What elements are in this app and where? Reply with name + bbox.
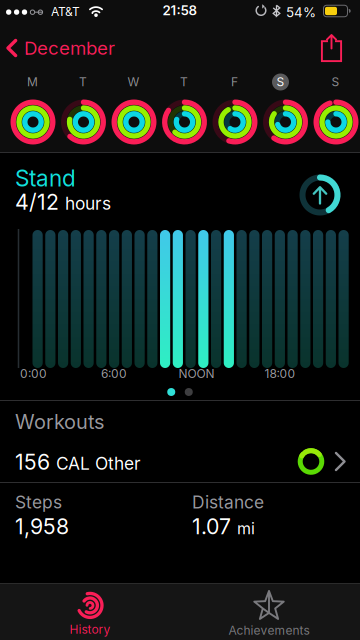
button[interactable]: Rings T	[60, 99, 106, 145]
staticText: Achievements	[228, 623, 309, 638]
button[interactable]: Rings S	[313, 99, 359, 145]
button[interactable]: Workouts, 156 calories, Other	[0, 401, 360, 483]
staticText: December	[24, 37, 115, 59]
staticText: 1,958	[15, 514, 69, 539]
staticText: S	[276, 75, 284, 89]
staticText: 18:00	[264, 366, 295, 381]
staticText: CAL Other	[56, 453, 141, 474]
staticText: Distance	[192, 492, 264, 512]
staticText: AT&T	[51, 4, 80, 19]
button[interactable]: Rings M	[10, 99, 56, 145]
staticText: M	[27, 75, 38, 89]
button[interactable]: Rings S	[262, 99, 308, 145]
staticText: NOON	[178, 366, 214, 381]
staticText: T	[79, 75, 87, 89]
staticText: F	[231, 75, 238, 89]
staticText: 6:00	[101, 366, 127, 381]
staticText: hours	[65, 193, 111, 214]
button[interactable]: Back, December	[0, 33, 115, 63]
button[interactable]: Rings W	[111, 99, 157, 145]
button[interactable]: Share	[315, 28, 348, 68]
staticText: mi	[237, 519, 255, 538]
button[interactable]: History	[30, 588, 150, 640]
button[interactable]: Achievements	[194, 588, 344, 640]
button[interactable]: Rings F	[212, 99, 258, 145]
staticText: History	[69, 622, 110, 637]
staticText: S	[331, 75, 339, 89]
staticText: T	[180, 75, 188, 89]
staticText: W	[127, 75, 139, 89]
staticText: Steps	[15, 492, 62, 512]
staticText: 0:00	[20, 366, 47, 381]
staticText: 21:58	[162, 3, 197, 18]
staticText: 4/12	[15, 189, 59, 215]
staticText: 156	[15, 449, 50, 475]
staticText: 54%	[286, 4, 316, 20]
staticText: Stand	[15, 165, 76, 192]
staticText: 1.07	[192, 514, 231, 539]
staticText: Workouts	[15, 410, 104, 434]
button[interactable]: Rings T	[161, 99, 207, 145]
